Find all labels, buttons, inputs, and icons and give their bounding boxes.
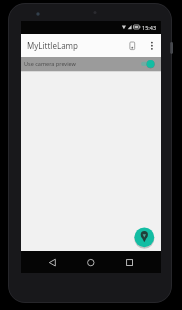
- staticText: Use camera preview: [24, 60, 76, 67]
- button[interactable]: [83, 255, 99, 270]
- button[interactable]: [134, 227, 155, 248]
- button[interactable]: [139, 57, 156, 69]
- button[interactable]: [21, 57, 161, 71]
- button[interactable]: [44, 255, 60, 270]
- button[interactable]: [122, 255, 138, 270]
- staticText: MyLittleLamp: [27, 40, 79, 51]
- button[interactable]: [147, 39, 157, 53]
- staticText: 15:43: [142, 24, 157, 31]
- button[interactable]: [127, 39, 138, 53]
